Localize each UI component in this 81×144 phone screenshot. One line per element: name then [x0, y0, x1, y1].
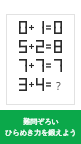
button[interactable]	[6, 40, 75, 53]
button[interactable]: ?	[6, 14, 75, 105]
button[interactable]	[6, 59, 75, 72]
button[interactable]: 難問ぞろい	[0, 110, 81, 144]
staticText: ひらめき力を鍛えよう	[5, 128, 77, 137]
staticText: ?	[56, 78, 61, 91]
button[interactable]	[6, 21, 75, 34]
button[interactable]: ?	[6, 78, 75, 91]
staticText: 難問ぞろい	[23, 117, 59, 126]
